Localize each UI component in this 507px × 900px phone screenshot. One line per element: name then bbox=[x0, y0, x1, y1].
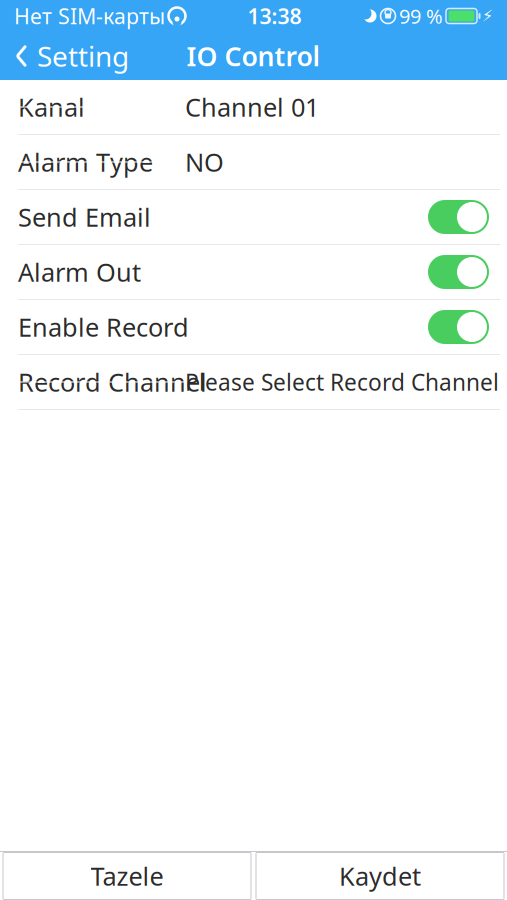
button[interactable]: Setting bbox=[0, 32, 143, 80]
staticText: Setting bbox=[37, 37, 129, 75]
staticText: Alarm Type bbox=[18, 145, 153, 179]
staticText: Record Channel bbox=[18, 365, 207, 399]
staticText: Kanal bbox=[18, 90, 85, 124]
button[interactable]: Send Email bbox=[419, 190, 498, 244]
button[interactable]: Alarm Type bbox=[0, 135, 507, 189]
staticText: Please Select Record Channel bbox=[185, 367, 499, 397]
staticText: Нет SIM-карты bbox=[14, 2, 165, 30]
button[interactable]: Alarm Out bbox=[419, 245, 498, 299]
staticText bbox=[165, 7, 168, 25]
staticText bbox=[396, 9, 399, 23]
staticText bbox=[377, 9, 380, 23]
staticText: 99 % bbox=[399, 3, 443, 29]
staticText: Channel 01 bbox=[185, 90, 319, 124]
staticText: Send Email bbox=[18, 200, 151, 234]
staticText bbox=[443, 9, 446, 23]
staticText: NO bbox=[185, 145, 224, 179]
staticText: 13:38 bbox=[247, 2, 301, 30]
button[interactable]: Enable Record bbox=[419, 300, 498, 354]
staticText: Enable Record bbox=[18, 310, 189, 344]
staticText: Kaydet bbox=[339, 859, 421, 893]
staticText: ⚡︎ bbox=[482, 7, 493, 25]
button[interactable]: Kaydet bbox=[256, 852, 504, 899]
button[interactable]: Record Channel bbox=[0, 355, 507, 409]
staticText: Tazele bbox=[90, 859, 163, 893]
staticText: IO Control bbox=[186, 38, 320, 74]
button[interactable]: Kanal bbox=[0, 80, 507, 134]
button[interactable]: Tazele bbox=[3, 852, 251, 899]
staticText: Alarm Out bbox=[18, 255, 141, 289]
